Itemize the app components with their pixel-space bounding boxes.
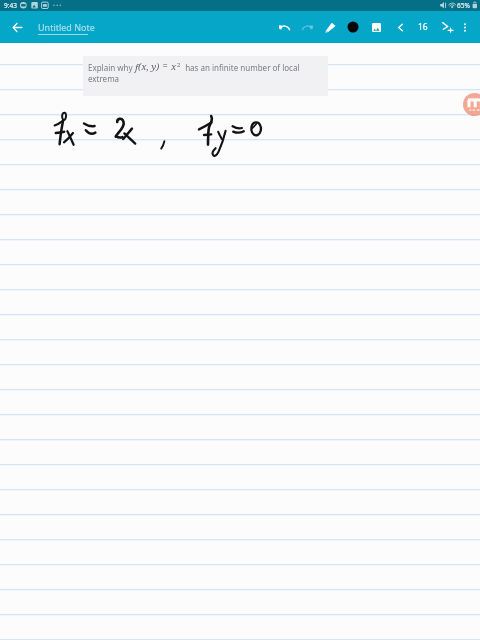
staticText: 16: [418, 21, 428, 33]
staticText: 2: [177, 61, 181, 69]
staticText: =: [160, 59, 171, 72]
staticText: f: [135, 61, 138, 74]
button[interactable]: 16: [410, 17, 436, 37]
button[interactable]: Ink colour: [342, 16, 364, 38]
staticText: extrema: [88, 73, 120, 84]
button[interactable]: Redo: [296, 16, 318, 38]
staticText: Untitled Note: [38, 21, 95, 33]
button[interactable]: Untitled Note: [38, 12, 98, 40]
button[interactable]: Previous page: [389, 16, 411, 38]
button[interactable]: Back: [7, 16, 28, 38]
button[interactable]: Add page: [436, 16, 458, 38]
staticText: 9:43: [4, 1, 17, 10]
staticText: x: [171, 60, 177, 73]
staticText: 65%: [457, 1, 470, 10]
button[interactable]: More options: [454, 16, 476, 38]
button[interactable]: Undo: [273, 16, 295, 38]
staticText: has an infinite number of local: [181, 62, 300, 73]
button[interactable]: Insert image: [365, 16, 387, 38]
staticText: (x, y): [138, 60, 160, 73]
button[interactable]: [83, 56, 328, 96]
staticText: Explain why: [88, 62, 135, 73]
button[interactable]: Pen: [319, 16, 341, 38]
